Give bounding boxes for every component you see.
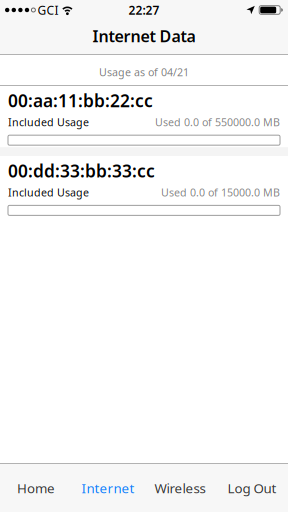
staticText: Internet: [81, 479, 134, 497]
staticText: Log Out: [227, 479, 276, 497]
staticText: Used 0.0 of 550000.0 MB: [155, 115, 280, 129]
staticText: Internet Data: [92, 25, 195, 47]
staticText: Usage as of 04/21: [99, 65, 189, 79]
staticText: 00:dd:33:bb:33:cc: [8, 159, 155, 182]
staticText: Home: [17, 479, 55, 497]
staticText: Used 0.0 of 15000.0 MB: [161, 185, 280, 199]
staticText: Wireless: [154, 479, 205, 497]
button[interactable]: Wireless: [144, 464, 216, 512]
button[interactable]: Log Out: [216, 464, 288, 512]
button[interactable]: Home: [0, 464, 72, 512]
button[interactable]: Internet: [72, 464, 144, 512]
staticText: Included Usage: [8, 115, 89, 129]
staticText: Included Usage: [8, 185, 89, 199]
staticText: 22:27: [128, 2, 159, 18]
staticText: 00:aa:11:bb:22:cc: [8, 89, 153, 112]
staticText: GCI: [37, 2, 58, 18]
